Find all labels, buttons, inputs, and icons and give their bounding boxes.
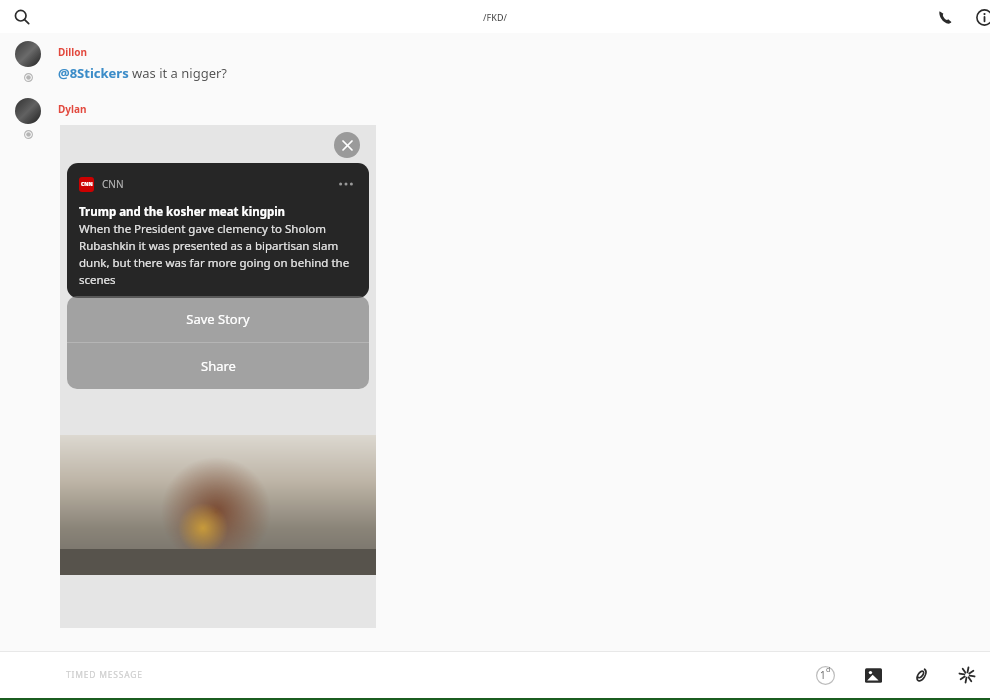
- button[interactable]: Message timer 1 day: [808, 658, 842, 692]
- staticText: d: [826, 665, 831, 675]
- staticText: Share: [201, 357, 236, 375]
- button[interactable]: Search: [8, 3, 36, 31]
- button[interactable]: Photo: [856, 658, 890, 692]
- button[interactable]: CNN: [67, 163, 369, 298]
- staticText: Save Story: [186, 310, 250, 328]
- staticText: CNN: [81, 181, 93, 188]
- staticText: Dylan: [58, 102, 87, 116]
- button[interactable]: Attach file: [904, 658, 938, 692]
- staticText: When the President gave clemency to Shol…: [79, 221, 357, 288]
- staticText: /FKD/: [483, 11, 507, 23]
- staticText: CNN: [102, 177, 124, 191]
- staticText: Dillon: [58, 45, 88, 59]
- button[interactable]: Share: [67, 343, 369, 389]
- button[interactable]: Avatar: [15, 98, 41, 124]
- button[interactable]: Effects: [952, 658, 982, 692]
- button[interactable]: Call: [930, 2, 960, 32]
- staticText: Trump and the kosher meat kingpin: [79, 204, 286, 220]
- button[interactable]: More options: [335, 173, 357, 195]
- staticText: @8Stickers was it a nigger?: [58, 64, 227, 82]
- button[interactable]: Close: [334, 132, 360, 158]
- button[interactable]: Info: [969, 2, 990, 32]
- staticText: 1: [820, 668, 826, 682]
- button[interactable]: Save Story: [67, 296, 369, 342]
- button[interactable]: TIMED MESSAGE: [66, 669, 143, 681]
- button[interactable]: Avatar: [15, 41, 41, 67]
